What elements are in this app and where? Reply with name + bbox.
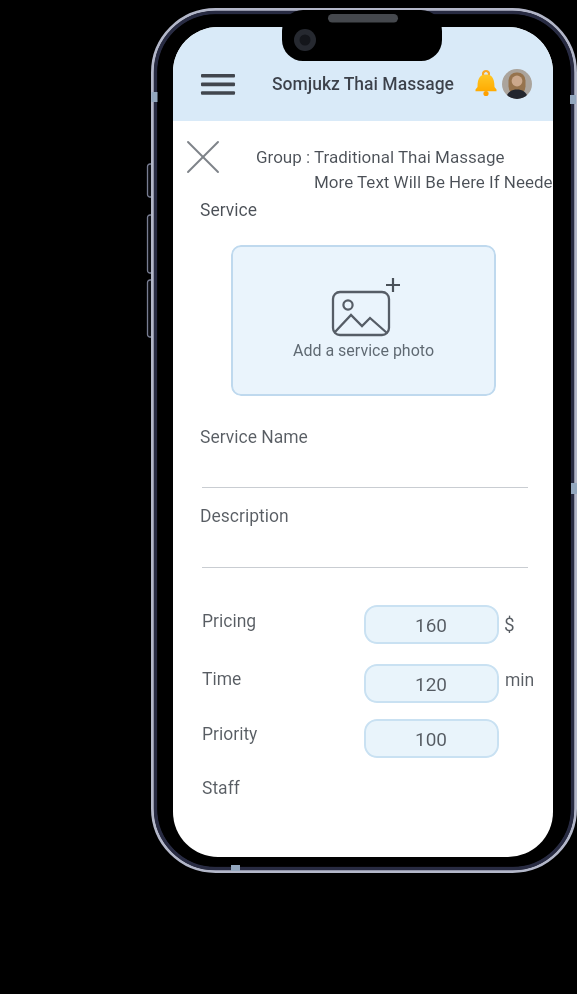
staticText: Pricing	[202, 611, 257, 632]
button[interactable]: 100	[364, 719, 499, 758]
button[interactable]: 160	[364, 605, 499, 644]
button[interactable]	[181, 135, 225, 179]
staticText: Description	[200, 506, 289, 527]
button[interactable]	[502, 69, 532, 99]
button[interactable]: 120	[364, 664, 499, 703]
staticText: Somjukz Thai Massage	[173, 74, 553, 95]
staticText: Add a service photo	[231, 341, 496, 360]
staticText: 100	[415, 728, 448, 750]
staticText: Staff	[202, 778, 240, 799]
button[interactable]: Add a service photo	[231, 245, 496, 396]
staticText: Time	[202, 669, 242, 690]
staticText: min	[505, 670, 535, 691]
staticText: 120	[415, 673, 448, 695]
button[interactable]	[471, 67, 501, 101]
staticText: $	[504, 613, 515, 635]
staticText: Service	[200, 200, 257, 221]
staticText: Group : Traditional Thai Massage	[256, 147, 505, 167]
staticText: 160	[415, 614, 448, 636]
staticText: Priority	[202, 724, 258, 745]
staticText: Service Name	[200, 427, 308, 448]
staticText: More Text Will Be Here If Needed	[314, 172, 553, 192]
button[interactable]	[191, 65, 245, 105]
